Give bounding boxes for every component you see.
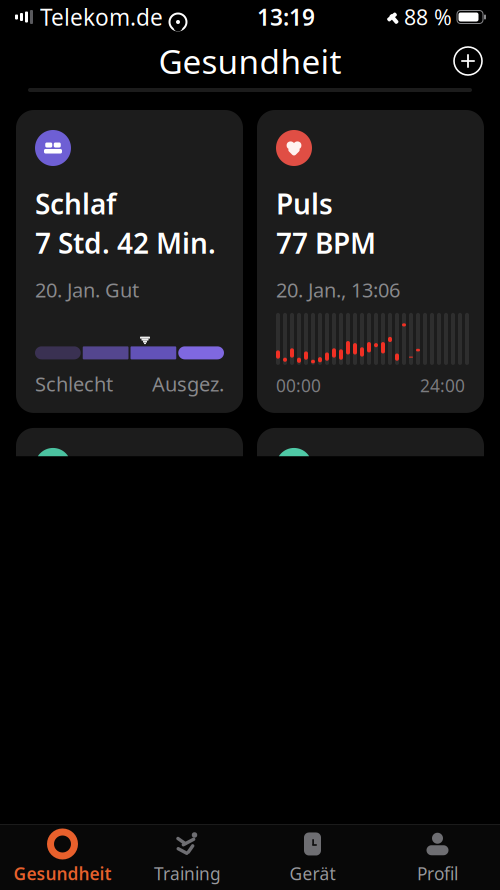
staticText: Schlecht — [35, 370, 113, 397]
staticText: Schlaf — [35, 185, 116, 222]
button[interactable]: Gesundheit — [0, 834, 125, 882]
button[interactable]: Gerät — [250, 834, 375, 882]
staticText: Gesundheitsfunktionen verwalten — [37, 817, 443, 851]
staticText: Ausgez. — [152, 370, 224, 397]
staticText: Gerät — [289, 862, 335, 885]
staticText: Gesundheit — [13, 862, 111, 885]
button[interactable]: Gesundheitsfunktionen verwalten — [16, 797, 484, 871]
staticText: 20. Jan., 13:06 — [276, 276, 400, 303]
button[interactable]: Profil — [375, 834, 500, 882]
staticText: 00:00 — [276, 374, 321, 397]
staticText: Training — [154, 862, 221, 885]
staticText: 20. Jan. Gut — [35, 276, 139, 303]
button[interactable]: Stress — [16, 428, 243, 782]
staticText: 13:19 — [257, 2, 315, 32]
staticText: Telekom.de — [40, 2, 163, 32]
staticText: 88 % — [404, 3, 452, 31]
staticText: 7 Std. 42 Min. — [35, 224, 216, 261]
button[interactable]: Puls — [257, 110, 484, 413]
button[interactable]: Training — [125, 834, 250, 882]
staticText: 24:00 — [420, 374, 465, 397]
staticText: 77 BPM — [276, 224, 376, 261]
button[interactable]: Schlaf — [16, 110, 243, 413]
button[interactable]: Hinzufügen — [446, 39, 490, 83]
button[interactable]: Vitalitätswert — [257, 428, 484, 782]
staticText: Profil — [417, 862, 458, 885]
staticText: Puls — [276, 185, 333, 222]
staticText: Gesundheit — [158, 39, 341, 83]
